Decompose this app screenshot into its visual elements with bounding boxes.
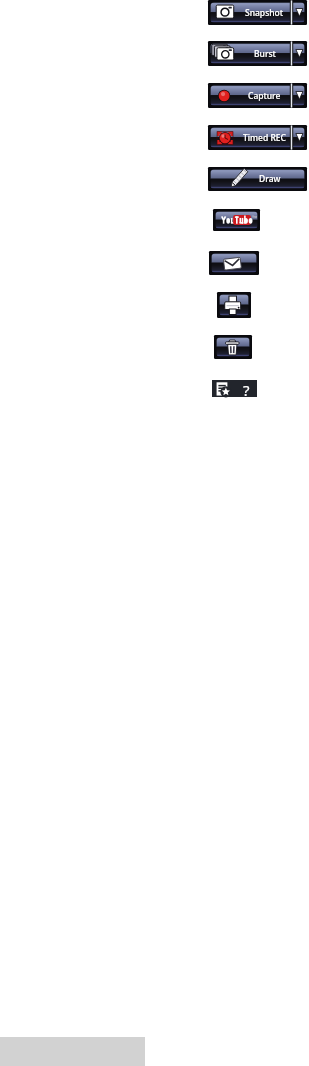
staticText: Timed REC	[243, 132, 286, 144]
button[interactable]: Send by e-mail	[209, 251, 259, 275]
button[interactable]: Help	[239, 380, 254, 397]
button[interactable]: Print	[217, 292, 251, 318]
button[interactable]: Upload to YouTube	[213, 209, 260, 231]
staticText: ?	[243, 380, 250, 397]
staticText: Capture	[248, 90, 281, 102]
button[interactable]: Draw	[208, 167, 307, 191]
button[interactable]: Timed REC options	[293, 125, 307, 150]
staticText: Burst	[254, 48, 276, 60]
button[interactable]: Timed REC	[208, 125, 293, 150]
button[interactable]: Burst options	[293, 41, 307, 66]
button[interactable]: Burst	[208, 41, 293, 66]
button[interactable]: Register	[212, 380, 233, 397]
button[interactable]	[208, 167, 307, 191]
button[interactable]: Snapshot options	[293, 0, 307, 25]
button[interactable]: Delete	[214, 335, 252, 359]
staticText: Draw	[259, 173, 281, 185]
staticText: Snapshot	[245, 7, 284, 19]
button[interactable]: Capture options	[293, 83, 307, 108]
button[interactable]: Snapshot	[208, 0, 293, 25]
button[interactable]: Capture	[208, 83, 293, 108]
